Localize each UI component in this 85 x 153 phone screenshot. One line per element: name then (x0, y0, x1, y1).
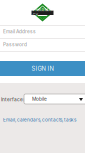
staticText: Email, calendars, contacts, tasks (3, 117, 76, 123)
button[interactable]: Email, calendars, contacts, tasks (0, 117, 85, 123)
staticText: Email Address (3, 29, 36, 34)
staticText: Mobile (32, 96, 47, 102)
button[interactable]: Email Address (0, 25, 85, 38)
button[interactable]: Mobile (24, 94, 85, 104)
staticText: Password (3, 42, 27, 47)
button[interactable]: Password (0, 38, 85, 51)
staticText: Interface: (1, 96, 24, 102)
button[interactable]: SIGN IN (0, 61, 85, 76)
staticText: PHARMACY (32, 7, 52, 17)
staticText: SIGN IN (31, 65, 53, 72)
